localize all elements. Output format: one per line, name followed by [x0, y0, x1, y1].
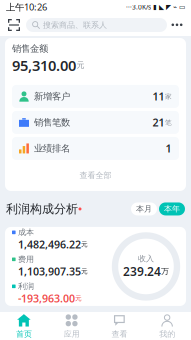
button[interactable]: 销售笔数 — [12, 111, 179, 134]
staticText: 1,482,496.22 — [18, 237, 81, 251]
staticText: 成本 — [18, 227, 34, 237]
staticText: 95,310.00 — [12, 55, 76, 75]
staticText: 我的 — [159, 329, 175, 339]
button[interactable]: 业绩排名 — [12, 137, 179, 160]
button[interactable]: 本年 — [159, 202, 185, 215]
button[interactable]: 查看全部 — [5, 160, 186, 191]
staticText: 首页 — [16, 329, 32, 339]
staticText: 1,103,907.35 — [18, 264, 81, 278]
staticText: 元 — [81, 267, 88, 275]
staticText: 搜索商品、联系人 — [43, 20, 107, 30]
staticText: 11 — [152, 89, 164, 104]
staticText: 应用 — [64, 329, 80, 339]
staticText: 利润 — [18, 281, 34, 291]
staticText: 销售笔数 — [34, 117, 70, 128]
staticText: -193,963.00 — [18, 291, 75, 305]
staticText: 239.24 — [123, 263, 161, 279]
staticText: 笔 — [165, 118, 172, 126]
staticText: 新增客户 — [34, 91, 70, 102]
button[interactable]: 扫一扫 — [4, 16, 24, 34]
staticText: 费用 — [18, 254, 34, 264]
button[interactable]: 应用 — [48, 309, 96, 340]
staticText: 利润构成分析 — [6, 202, 78, 216]
staticText: 查看全部 — [79, 170, 111, 180]
staticText: 本年 — [164, 204, 180, 214]
staticText: ▮ ◣ ◤ ⌁ ▭ — [151, 3, 185, 11]
staticText: 销售金额 — [12, 43, 48, 54]
staticText: 21 — [152, 115, 164, 130]
staticText: 家 — [165, 92, 172, 100]
button[interactable]: 新增客户 — [12, 85, 179, 108]
staticText: 业绩排名 — [34, 143, 70, 154]
button[interactable]: 我的 — [143, 309, 191, 340]
staticText: 查看 — [111, 329, 127, 339]
button[interactable]: 更多 — [167, 16, 187, 34]
staticText: 上午10:26 — [6, 1, 47, 13]
staticText: 本月 — [136, 204, 152, 214]
staticText: 元 — [76, 60, 84, 70]
button[interactable]: 本月 — [131, 202, 157, 215]
staticText: 元 — [81, 240, 88, 248]
staticText: 元 — [75, 294, 82, 302]
staticText: ···3.0K/s — [126, 3, 151, 11]
staticText: 万 — [161, 266, 169, 276]
staticText: 1 — [165, 141, 171, 156]
button[interactable]: 查看 — [95, 309, 143, 340]
staticText: 收入 — [138, 254, 154, 263]
button[interactable]: 搜索商品、联系人 — [26, 18, 167, 32]
button[interactable]: 首页 — [0, 309, 48, 340]
